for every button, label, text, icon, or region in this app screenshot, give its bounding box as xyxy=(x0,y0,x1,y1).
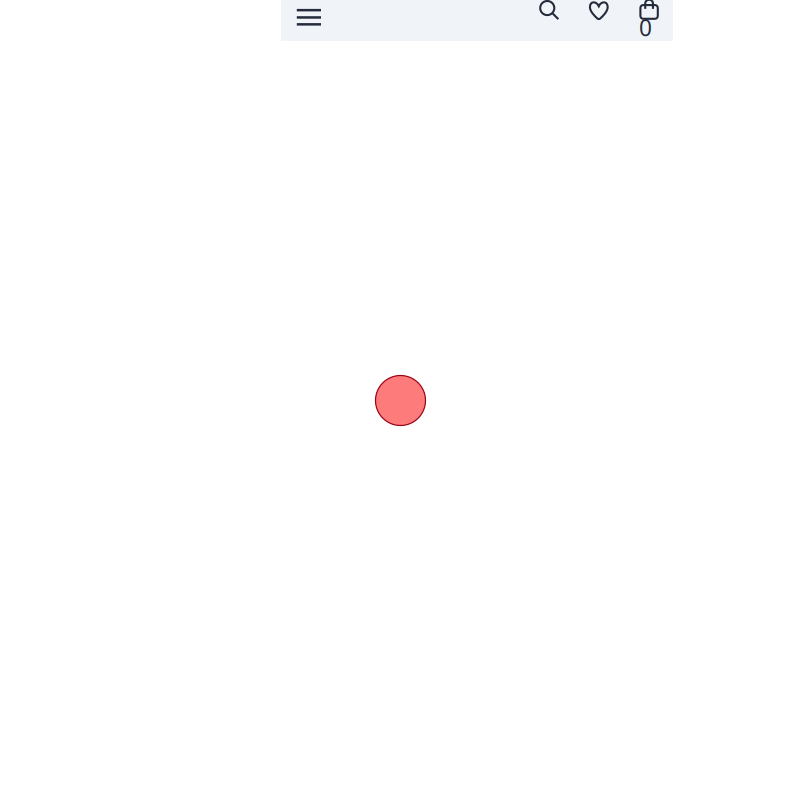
button[interactable]: Search xyxy=(531,0,567,41)
staticText: 0 xyxy=(639,12,652,42)
button[interactable]: Cart, 0 items xyxy=(631,0,667,41)
button[interactable]: Wishlist xyxy=(581,0,617,41)
button[interactable]: Open menu xyxy=(287,0,331,41)
